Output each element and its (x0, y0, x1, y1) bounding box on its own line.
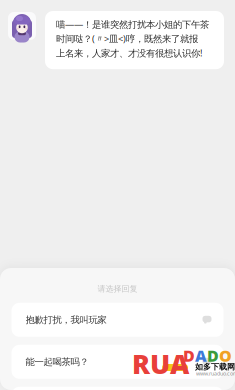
staticText: R (132, 346, 150, 381)
button[interactable]: 抱歉打扰，我叫玩家 (11, 303, 223, 337)
staticText: A (195, 345, 207, 366)
staticText: www.ruaduo.com (196, 370, 235, 377)
staticText: 上名来，人家才、才没有很想认识你! (56, 47, 203, 59)
staticText: U (150, 346, 170, 381)
staticText: 时间哒？(〃>皿<)哼，既然来了就报 (56, 32, 198, 45)
staticText: D (183, 345, 195, 366)
staticText: 请选择回复 (97, 284, 137, 294)
staticText: 如多下载网 (195, 362, 235, 372)
button[interactable]: 能一起喝茶吗？ (11, 345, 223, 379)
staticText: 喵——！是谁突然打扰本小姐的下午茶 (56, 18, 209, 30)
staticText: D (207, 345, 219, 366)
staticText: 抱歉打扰，我叫玩家 (25, 314, 106, 326)
staticText: O (219, 345, 232, 366)
staticText: 能一起喝茶吗？ (25, 356, 88, 368)
staticText: A (170, 346, 189, 381)
